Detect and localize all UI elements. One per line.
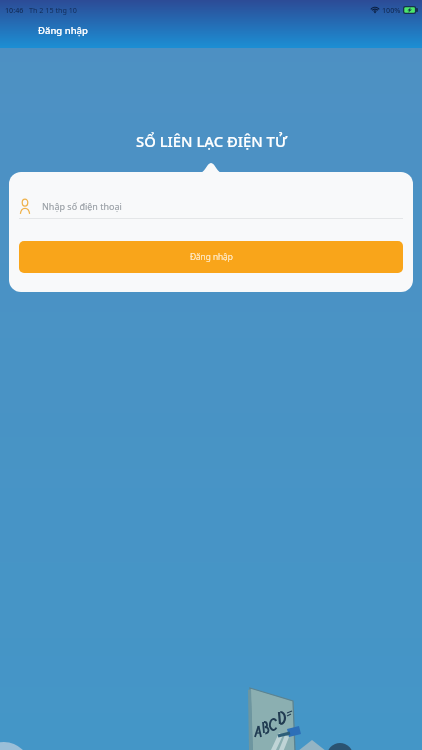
button[interactable]: Đăng nhập bbox=[19, 241, 403, 273]
other: Wifi bbox=[370, 5, 380, 14]
button[interactable]: Tài khoản bbox=[19, 194, 403, 218]
staticText: Nhập số điện thoại bbox=[42, 200, 122, 212]
staticText: 100% bbox=[382, 5, 401, 15]
staticText: Đăng nhập bbox=[38, 24, 88, 37]
staticText: Th 2 15 thg 10 bbox=[29, 5, 77, 15]
staticText: Đăng nhập bbox=[190, 251, 233, 263]
staticText: 10:46 bbox=[5, 5, 24, 15]
other: Pin bbox=[403, 6, 418, 14]
other: Tài khoản bbox=[20, 198, 30, 215]
staticText: SỔ LIÊN LẠC ĐIỆN TỬ bbox=[136, 131, 287, 151]
